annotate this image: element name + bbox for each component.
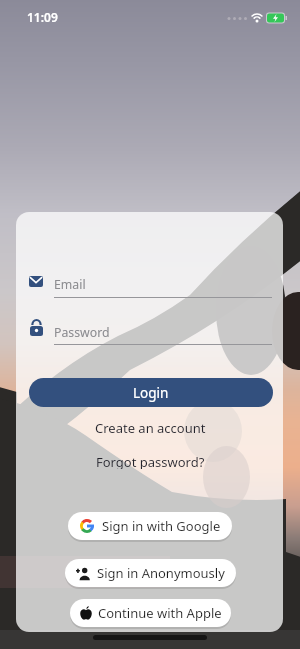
button[interactable]: Sign in Anonymously xyxy=(65,559,236,587)
button[interactable]: Forgot password? xyxy=(0,453,300,469)
button[interactable]: Sign in with Google xyxy=(68,512,232,540)
staticText: 11:09 xyxy=(27,9,58,25)
staticText: Login xyxy=(133,384,169,402)
staticText: Sign in with Google xyxy=(102,517,221,535)
staticText: Create an account xyxy=(95,419,206,435)
staticText: Email xyxy=(54,276,86,292)
staticText: Password xyxy=(54,324,110,340)
staticText: Sign in Anonymously xyxy=(97,564,225,582)
button[interactable]: Create an account xyxy=(0,419,300,435)
button[interactable] xyxy=(29,316,272,346)
staticText: Forgot password? xyxy=(96,453,205,469)
button[interactable] xyxy=(29,268,272,298)
button[interactable]: Login xyxy=(29,378,273,407)
button[interactable]: Continue with Apple xyxy=(70,599,231,627)
staticText: Continue with Apple xyxy=(98,604,222,622)
